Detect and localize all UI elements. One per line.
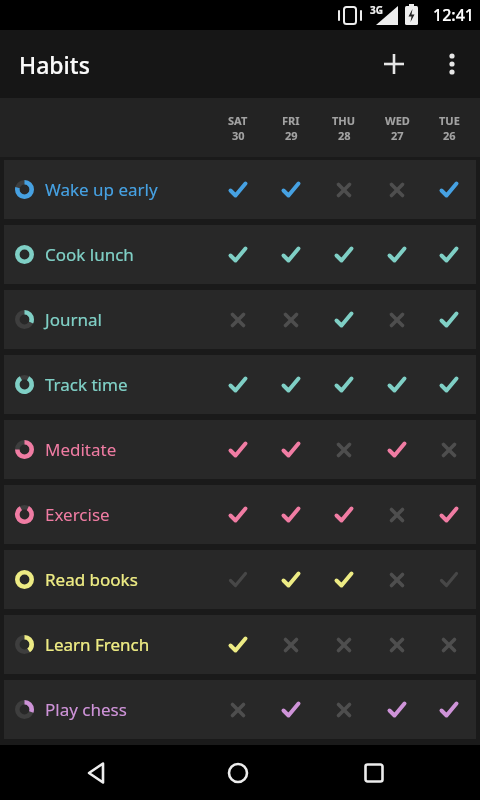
button[interactable] [275, 564, 307, 596]
button[interactable] [275, 304, 307, 336]
button[interactable]: Journal [4, 290, 476, 349]
button[interactable] [433, 304, 465, 336]
staticText: Play chess [45, 698, 127, 721]
button[interactable] [222, 564, 254, 596]
button[interactable]: Exercise [4, 485, 476, 544]
button[interactable]: Meditate [4, 420, 476, 479]
button[interactable] [328, 304, 360, 336]
button[interactable] [275, 174, 307, 206]
staticText: Learn French [45, 633, 150, 656]
button[interactable] [381, 304, 413, 336]
staticText: FRI [282, 113, 300, 128]
button[interactable] [381, 564, 413, 596]
button[interactable] [222, 239, 254, 271]
button[interactable] [328, 499, 360, 531]
button[interactable] [275, 629, 307, 661]
button[interactable] [222, 434, 254, 466]
button[interactable] [381, 434, 413, 466]
button[interactable] [433, 564, 465, 596]
button[interactable]: Play chess [4, 680, 476, 739]
button[interactable]: Learn French [4, 615, 476, 674]
button[interactable] [275, 239, 307, 271]
button[interactable] [381, 174, 413, 206]
button[interactable] [328, 564, 360, 596]
button[interactable] [381, 694, 413, 726]
button[interactable] [433, 694, 465, 726]
button[interactable] [432, 44, 472, 84]
button[interactable] [275, 369, 307, 401]
staticText: SAT [228, 113, 248, 128]
button[interactable] [222, 304, 254, 336]
staticText: 28 [338, 128, 351, 143]
button[interactable] [328, 434, 360, 466]
button[interactable] [275, 434, 307, 466]
button[interactable]: Wake up early [4, 160, 476, 219]
button[interactable] [328, 369, 360, 401]
staticText: Journal [45, 308, 102, 331]
button[interactable] [328, 239, 360, 271]
staticText: 3G [370, 3, 383, 17]
button[interactable] [433, 174, 465, 206]
button[interactable]: Cook lunch [4, 225, 476, 284]
staticText: TUE [439, 113, 460, 128]
button[interactable] [433, 629, 465, 661]
button[interactable] [328, 694, 360, 726]
staticText: Track time [45, 373, 128, 396]
staticText: Read books [45, 568, 138, 591]
staticText: 30 [232, 128, 245, 143]
staticText: 27 [391, 128, 404, 143]
staticText: Cook lunch [45, 243, 134, 266]
staticText: WED [385, 113, 410, 128]
button[interactable] [381, 629, 413, 661]
staticText: 12:41 [433, 4, 474, 26]
button[interactable] [216, 751, 260, 795]
staticText: Habits [19, 49, 90, 80]
button[interactable] [433, 369, 465, 401]
button[interactable] [222, 369, 254, 401]
staticText: THU [332, 113, 356, 128]
button[interactable] [222, 629, 254, 661]
staticText: Exercise [45, 503, 110, 526]
button[interactable] [328, 629, 360, 661]
button[interactable] [275, 499, 307, 531]
button[interactable] [352, 751, 396, 795]
button[interactable] [433, 499, 465, 531]
button[interactable] [222, 174, 254, 206]
staticText: 26 [443, 128, 456, 143]
button[interactable] [328, 174, 360, 206]
button[interactable] [381, 239, 413, 271]
button[interactable] [222, 694, 254, 726]
button[interactable] [433, 239, 465, 271]
staticText: Meditate [45, 438, 117, 461]
button[interactable] [222, 499, 254, 531]
button[interactable]: Track time [4, 355, 476, 414]
button[interactable] [372, 42, 416, 86]
button[interactable] [381, 369, 413, 401]
staticText: 29 [285, 128, 298, 143]
button[interactable] [275, 694, 307, 726]
button[interactable] [75, 751, 119, 795]
button[interactable] [433, 434, 465, 466]
button[interactable] [381, 499, 413, 531]
button[interactable]: Read books [4, 550, 476, 609]
staticText: Wake up early [45, 178, 158, 201]
